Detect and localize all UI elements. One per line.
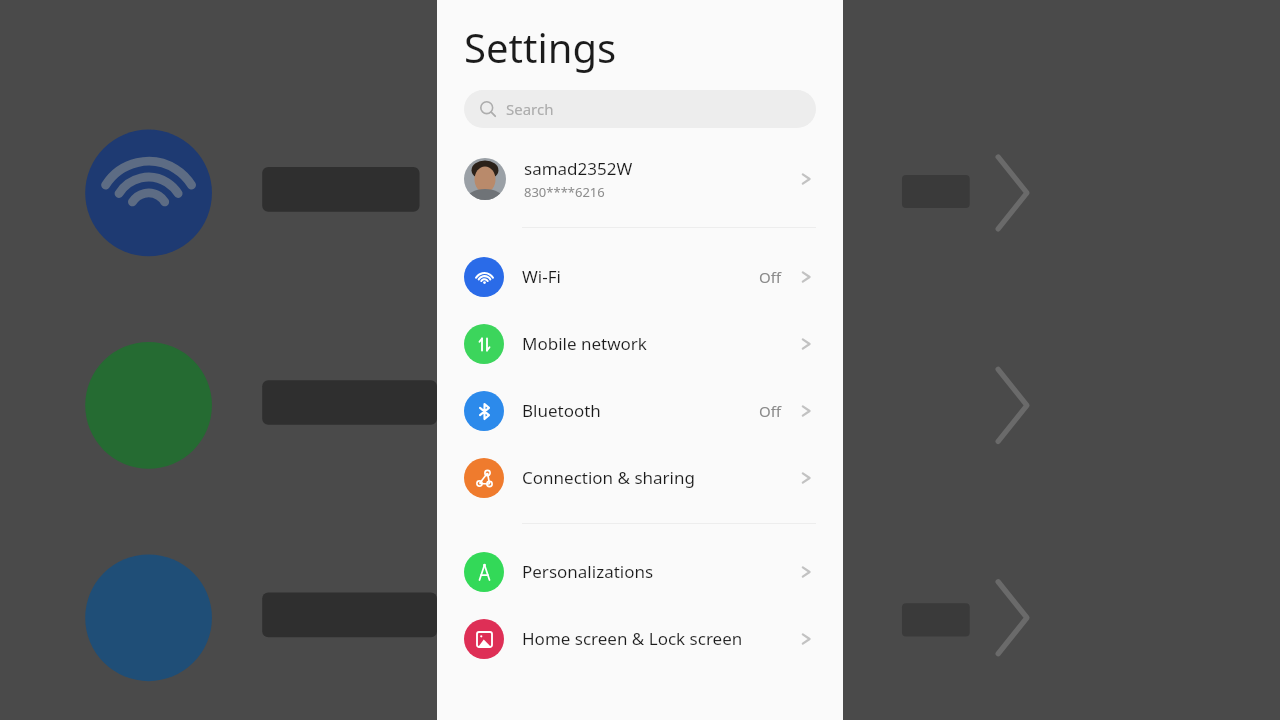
staticText: Connection & sharing — [522, 466, 695, 489]
staticText: Bluetooth — [522, 399, 601, 422]
staticText: Home screen & Lock screen — [522, 627, 743, 650]
staticText: Settings — [464, 20, 617, 74]
button[interactable]: Personalizations — [437, 538, 843, 605]
staticText: samad2352W — [524, 157, 633, 180]
button[interactable]: Mobile network — [437, 310, 843, 377]
button[interactable]: samad2352W — [437, 146, 843, 212]
staticText: Off — [759, 401, 782, 421]
button[interactable]: Connection & sharing — [437, 444, 843, 511]
staticText: Personalizations — [522, 560, 654, 583]
button[interactable]: Bluetooth — [437, 377, 843, 444]
staticText: Mobile network — [522, 332, 647, 355]
button[interactable]: Home screen & Lock screen — [437, 605, 843, 672]
staticText: Search — [506, 99, 554, 119]
staticText: Off — [759, 267, 782, 287]
button[interactable]: Wi-Fi — [437, 243, 843, 310]
staticText: Wi-Fi — [522, 265, 561, 288]
staticText: 830****6216 — [524, 183, 605, 201]
button[interactable]: Search — [464, 90, 816, 128]
